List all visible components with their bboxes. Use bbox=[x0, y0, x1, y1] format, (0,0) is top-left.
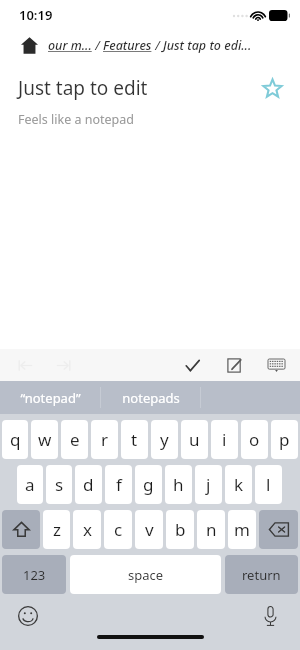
button[interactable]: space bbox=[70, 555, 221, 594]
button[interactable]: c bbox=[104, 510, 132, 549]
button[interactable]: a bbox=[17, 465, 43, 504]
button[interactable]: y bbox=[151, 420, 178, 459]
staticText: space bbox=[128, 566, 164, 584]
staticText: x bbox=[83, 518, 92, 541]
staticText: notepads bbox=[122, 389, 180, 407]
button[interactable]: e bbox=[61, 420, 88, 459]
staticText: a bbox=[25, 473, 35, 496]
button[interactable]: j bbox=[195, 465, 222, 504]
button[interactable]: Hide keyboard bbox=[262, 351, 290, 379]
staticText: f bbox=[116, 473, 122, 496]
button[interactable]: g bbox=[135, 465, 162, 504]
button[interactable]: Done bbox=[178, 351, 206, 379]
button[interactable]: Emoji bbox=[14, 602, 42, 630]
button[interactable]: x bbox=[73, 510, 101, 549]
staticText: h bbox=[173, 473, 184, 496]
staticText: 123 bbox=[23, 566, 46, 584]
staticText: 10:19 bbox=[19, 6, 53, 24]
button[interactable]: i bbox=[211, 420, 238, 459]
staticText: j bbox=[206, 473, 211, 496]
staticText: return bbox=[242, 566, 281, 584]
button[interactable]: t bbox=[121, 420, 148, 459]
staticText: / bbox=[92, 37, 103, 54]
staticText: p bbox=[279, 428, 290, 451]
button[interactable]: m bbox=[228, 510, 256, 549]
staticText: c bbox=[114, 518, 123, 541]
button[interactable]: Backspace bbox=[259, 510, 298, 549]
button[interactable]: return bbox=[225, 555, 298, 594]
staticText: “notepad” bbox=[20, 389, 81, 407]
button[interactable]: Favorite bbox=[258, 74, 286, 102]
staticText: n bbox=[206, 518, 217, 541]
staticText: e bbox=[70, 428, 80, 451]
button[interactable]: notepads bbox=[101, 381, 200, 414]
button[interactable]: 123 bbox=[2, 555, 66, 594]
button[interactable]: s bbox=[46, 465, 72, 504]
staticText: m bbox=[234, 518, 250, 541]
button[interactable]: q bbox=[2, 420, 28, 459]
button[interactable]: Voice input bbox=[256, 602, 284, 630]
staticText: / bbox=[152, 37, 163, 54]
button[interactable]: u bbox=[181, 420, 208, 459]
button[interactable]: f bbox=[105, 465, 132, 504]
button[interactable]: v bbox=[135, 510, 163, 549]
button[interactable]: Home bbox=[18, 34, 40, 56]
staticText: w bbox=[38, 428, 52, 451]
button[interactable]: our m... bbox=[48, 37, 92, 54]
staticText: b bbox=[175, 518, 186, 541]
staticText: Just tap to edi... bbox=[163, 37, 252, 54]
staticText: s bbox=[55, 473, 64, 496]
button[interactable]: z bbox=[43, 510, 70, 549]
staticText: r bbox=[101, 428, 109, 451]
button[interactable]: Features bbox=[103, 37, 152, 54]
staticText: v bbox=[145, 518, 154, 541]
button[interactable]: Shift bbox=[2, 510, 40, 549]
staticText: l bbox=[266, 473, 271, 496]
button[interactable]: d bbox=[75, 465, 102, 504]
staticText: Just tap to edit bbox=[18, 75, 258, 101]
button[interactable]: w bbox=[31, 420, 58, 459]
button[interactable]: b bbox=[166, 510, 194, 549]
staticText: u bbox=[189, 428, 200, 451]
staticText: o bbox=[249, 428, 260, 451]
button[interactable]: r bbox=[91, 420, 118, 459]
button[interactable]: n bbox=[197, 510, 225, 549]
staticText: t bbox=[131, 428, 138, 451]
staticText: g bbox=[143, 473, 154, 496]
button[interactable]: “notepad” bbox=[0, 381, 100, 414]
button[interactable]: k bbox=[225, 465, 252, 504]
button[interactable]: h bbox=[165, 465, 192, 504]
button[interactable]: l bbox=[255, 465, 282, 504]
staticText: i bbox=[222, 428, 227, 451]
staticText: k bbox=[234, 473, 244, 496]
staticText: Feels like a notepad bbox=[18, 111, 134, 128]
button[interactable]: p bbox=[271, 420, 298, 459]
button[interactable]: Edit bbox=[220, 351, 248, 379]
staticText: z bbox=[53, 518, 61, 541]
staticText: q bbox=[10, 428, 21, 451]
staticText: d bbox=[83, 473, 94, 496]
button[interactable]: o bbox=[241, 420, 268, 459]
staticText: y bbox=[160, 428, 169, 451]
